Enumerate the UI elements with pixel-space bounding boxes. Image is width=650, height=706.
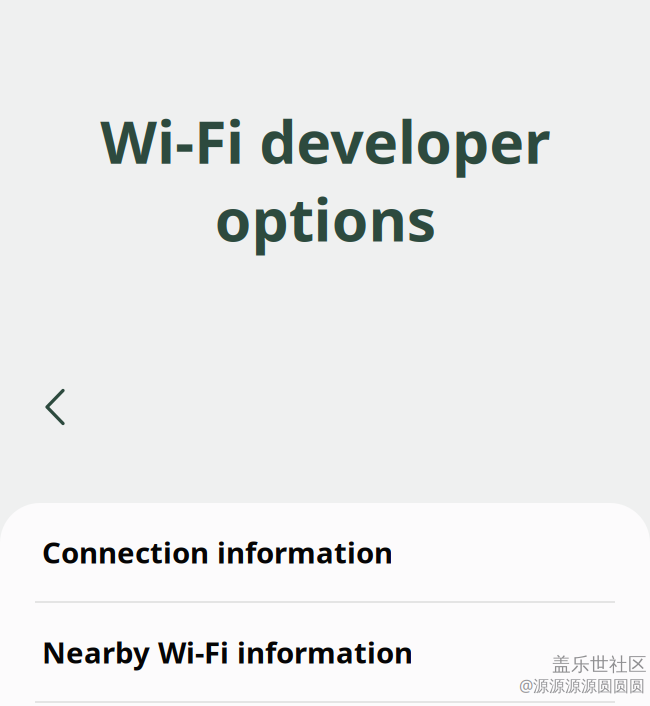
button[interactable]: Nearby Wi-Fi information <box>0 603 650 703</box>
staticText: Nearby Wi-Fi information <box>42 632 413 671</box>
staticText: Connection information <box>42 532 393 571</box>
staticText: 盖乐世社区 <box>552 653 647 676</box>
staticText: Wi-Fi developer options <box>100 102 550 258</box>
staticText: @源源源源圆圆圆 <box>519 675 645 696</box>
button[interactable]: Connection information <box>0 503 650 603</box>
button[interactable]: Back <box>28 380 82 434</box>
